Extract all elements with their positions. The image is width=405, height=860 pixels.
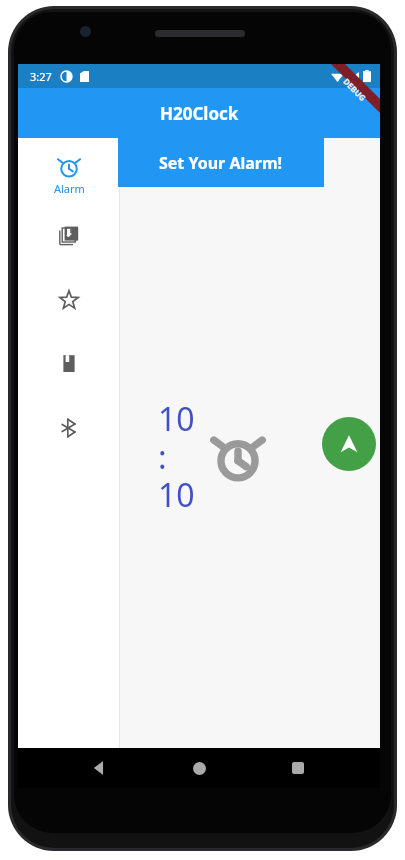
staticText: Set Your Alarm!	[159, 152, 283, 174]
button[interactable]: Recent apps	[281, 751, 315, 785]
staticText: 10: 10	[158, 397, 202, 516]
button[interactable]: Home	[182, 751, 216, 785]
button[interactable]: Music library	[18, 218, 120, 254]
staticText: H20Clock	[160, 102, 239, 125]
staticText: DEBUG	[341, 76, 369, 103]
button[interactable]: Bluetooth	[18, 410, 120, 446]
button[interactable]: Bookmarks	[18, 346, 120, 382]
button[interactable]: Alarm	[18, 148, 120, 204]
staticText: 3:27	[30, 69, 52, 84]
button[interactable]: Favorites	[18, 282, 120, 318]
button[interactable]: Set Your Alarm!	[118, 138, 324, 187]
button[interactable]: Back	[83, 751, 117, 785]
button[interactable]: Navigate	[322, 417, 376, 471]
staticText: Alarm	[54, 181, 85, 196]
